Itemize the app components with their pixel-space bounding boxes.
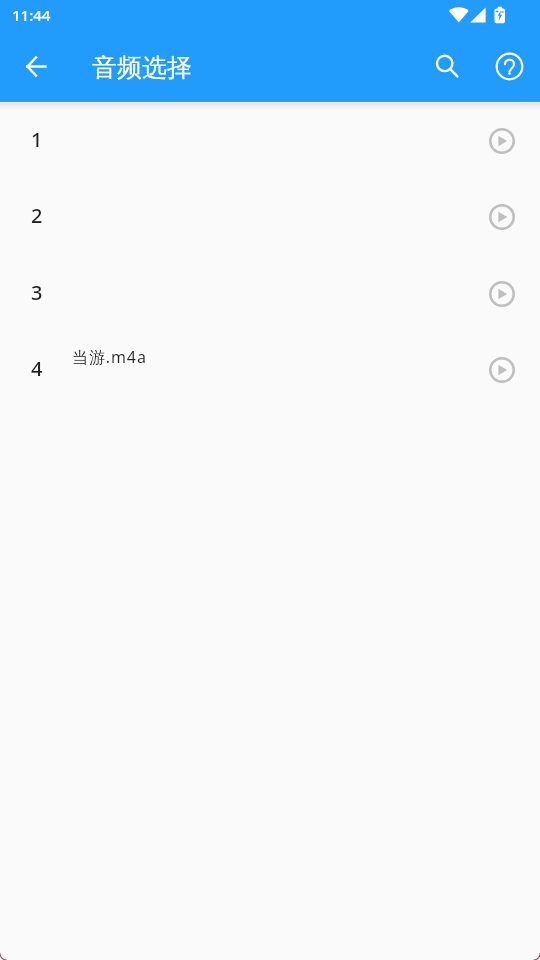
staticText: 2 xyxy=(31,202,43,229)
button[interactable]: Play xyxy=(486,201,518,233)
staticText: 3 xyxy=(31,279,43,306)
staticText: 音频选择 xyxy=(92,52,192,83)
staticText: 1 xyxy=(31,126,43,153)
button[interactable]: 1 xyxy=(0,102,540,179)
staticText: 11:44 xyxy=(12,5,51,25)
button[interactable]: Play xyxy=(486,354,518,386)
button[interactable]: Play xyxy=(486,278,518,310)
button[interactable]: 2 xyxy=(0,178,540,255)
button[interactable]: 3 xyxy=(0,255,540,332)
button[interactable]: Search xyxy=(423,42,471,90)
button[interactable]: Back xyxy=(8,38,64,94)
staticText: 4 xyxy=(31,355,43,382)
button[interactable]: Help xyxy=(487,44,531,88)
button[interactable]: 4 xyxy=(0,331,540,408)
staticText: 当游.m4a xyxy=(72,346,147,368)
button[interactable]: Play xyxy=(486,125,518,157)
